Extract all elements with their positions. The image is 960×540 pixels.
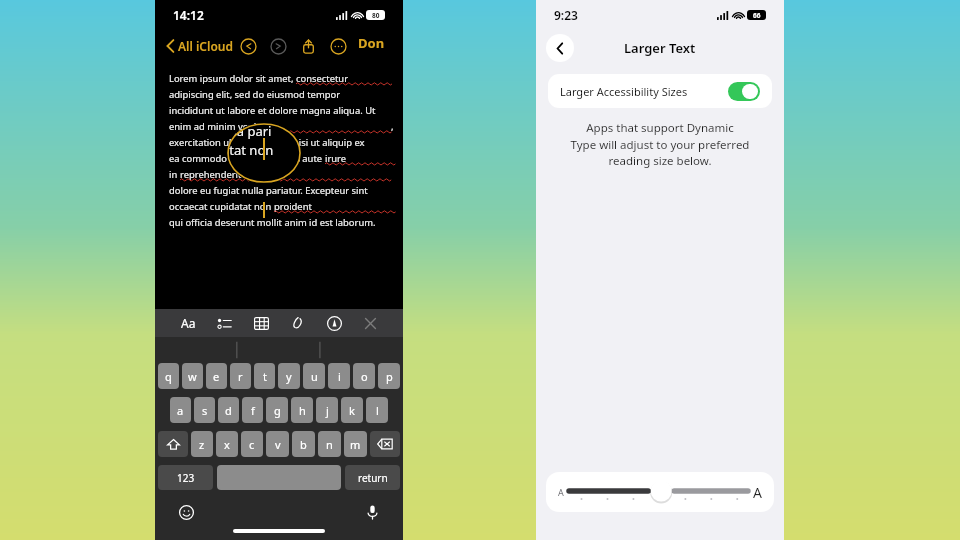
staticText: 80 xyxy=(372,11,380,20)
staticText: j xyxy=(326,403,329,418)
staticText: v xyxy=(275,437,281,452)
button[interactable]: Checklist xyxy=(213,312,235,334)
button[interactable]: q xyxy=(158,363,179,389)
button[interactable]: e xyxy=(206,363,227,389)
button[interactable]: Delete xyxy=(370,431,400,457)
button[interactable]: Space xyxy=(217,465,341,490)
button[interactable]: j xyxy=(316,397,338,423)
staticText: reprehenderit xyxy=(180,168,242,181)
staticText: exercitation ullamco laboris nisi ut ali… xyxy=(169,136,365,149)
staticText: Apps that support Dynamic Type will adju… xyxy=(556,120,764,168)
button[interactable]: h xyxy=(291,397,313,423)
staticText: 66 xyxy=(753,11,761,20)
staticText: z xyxy=(199,437,205,452)
button[interactable]: More xyxy=(326,34,350,58)
button[interactable]: p xyxy=(378,363,400,389)
staticText: t xyxy=(263,369,267,384)
button[interactable]: a xyxy=(170,397,191,423)
button[interactable]: Attach xyxy=(286,312,308,334)
button[interactable]: Emoji xyxy=(176,502,196,522)
button[interactable]: z xyxy=(191,431,213,457)
staticText: Lorem ipsum dolor sit amet, xyxy=(169,72,296,85)
staticText: u xyxy=(311,369,318,384)
button[interactable]: Text size slider xyxy=(569,479,748,505)
staticText: in xyxy=(169,168,180,181)
button[interactable]: Undo xyxy=(236,34,260,58)
button[interactable]: r xyxy=(230,363,251,389)
button[interactable]: n xyxy=(318,431,341,457)
staticText: c xyxy=(249,437,255,452)
button[interactable]: Done xyxy=(356,30,393,62)
staticText: i xyxy=(338,369,341,384)
button[interactable]: b xyxy=(292,431,315,457)
staticText: All iCloud xyxy=(178,38,233,54)
staticText: l xyxy=(376,403,379,418)
button[interactable]: Text format xyxy=(177,312,199,334)
staticText: f xyxy=(251,403,255,418)
staticText: n xyxy=(326,437,333,452)
button[interactable]: return xyxy=(345,465,400,490)
staticText: y xyxy=(286,369,292,384)
staticText: qui officia deserunt mollit anim id est … xyxy=(169,216,376,229)
button[interactable]: w xyxy=(182,363,203,389)
staticText: a xyxy=(177,403,184,418)
staticText: occaecat cupidatat non xyxy=(169,200,274,213)
button[interactable]: Redo xyxy=(266,34,290,58)
staticText: 14:12 xyxy=(173,7,204,23)
button[interactable]: 123 xyxy=(158,465,213,490)
staticText: Larger Accessibility Sizes xyxy=(560,84,688,99)
button[interactable]: All iCloud xyxy=(163,34,236,58)
button[interactable]: Dictation xyxy=(362,502,382,522)
staticText: incididunt ut labore et dolore magna ali… xyxy=(169,104,376,117)
staticText: dolore eu fugiat nulla pariatur. Excepte… xyxy=(169,184,368,197)
staticText: sunt mollit xyxy=(228,178,280,180)
button[interactable]: x xyxy=(216,431,238,457)
staticText: w xyxy=(188,369,197,384)
button[interactable]: v xyxy=(266,431,289,457)
staticText: b xyxy=(300,437,307,452)
staticText: m xyxy=(350,437,361,452)
button[interactable]: u xyxy=(303,363,325,389)
staticText: Larger Text xyxy=(624,39,696,57)
button[interactable]: t xyxy=(254,363,275,389)
staticText: g xyxy=(274,403,281,418)
button[interactable]: y xyxy=(278,363,300,389)
staticText: h xyxy=(299,403,306,418)
staticText: Aa xyxy=(181,315,196,331)
staticText: p xyxy=(386,369,393,384)
staticText: enim ad minim xyxy=(169,120,238,133)
button[interactable]: o xyxy=(353,363,375,389)
staticText: d xyxy=(225,403,232,418)
button[interactable]: g xyxy=(266,397,288,423)
staticText: r xyxy=(238,369,243,384)
staticText: A xyxy=(558,486,564,498)
staticText: A xyxy=(753,483,762,502)
staticText: x xyxy=(224,437,230,452)
button[interactable]: Shift xyxy=(158,431,188,457)
button[interactable]: m xyxy=(344,431,367,457)
button[interactable]: f xyxy=(242,397,263,423)
staticText: consectetur xyxy=(296,72,349,85)
staticText: 123 xyxy=(177,471,195,485)
staticText: return xyxy=(358,471,388,485)
staticText: o xyxy=(361,369,368,384)
button[interactable]: Table xyxy=(250,312,272,334)
staticText: s xyxy=(202,403,208,418)
button[interactable]: d xyxy=(218,397,239,423)
button[interactable]: Back xyxy=(546,34,574,62)
staticText: adipiscing elit, sed do eiusmod tempor xyxy=(169,88,341,101)
button[interactable]: Markup xyxy=(323,312,345,334)
staticText: e xyxy=(213,369,220,384)
staticText: k xyxy=(349,403,355,418)
staticText: ea commodo consequat. Duis aute xyxy=(169,152,325,165)
button[interactable]: l xyxy=(366,397,388,423)
button[interactable]: k xyxy=(341,397,363,423)
button[interactable]: c xyxy=(241,431,263,457)
button[interactable]: Share xyxy=(296,34,320,58)
staticText: irure xyxy=(325,152,347,165)
button[interactable]: s xyxy=(194,397,215,423)
button[interactable]: Larger Accessibility Sizes xyxy=(548,74,772,108)
staticText: veniam xyxy=(238,120,271,133)
button[interactable]: i xyxy=(328,363,350,389)
button[interactable]: Close xyxy=(359,312,381,334)
